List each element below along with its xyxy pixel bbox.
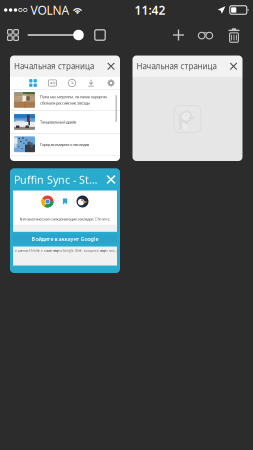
button[interactable]: New tab [166,24,190,46]
button[interactable]: Пока мы мерзнем, на каких курортах [10,90,120,110]
button[interactable]: Bookmarks [43,77,62,89]
button[interactable]: Grid layout [2,24,24,46]
staticText: Пока мы мерзнем, на каких курортах [40,94,107,99]
button[interactable]: Город всемирного наследия [10,134,120,155]
button[interactable]: Speed dial [23,77,43,89]
staticText: Puffin Sync - Step 1:... [14,172,102,187]
staticText: и данные Chrome в вашем аккаунте Google … [15,249,117,252]
staticText: VOLNA [30,2,69,18]
staticText: Город всемирного наследия [40,142,89,147]
staticText: сбежали российские звезды [40,100,90,106]
staticText: Автоматическая синхронизация закладок Ch… [19,216,110,221]
button[interactable]: New incognito tab [193,24,217,46]
button[interactable]: Close tab [226,55,240,77]
button[interactable]: History [62,77,82,89]
staticText: Начальная страница [14,61,94,71]
staticText: Начальная страница [136,61,216,71]
staticText: 11:42 [134,2,165,18]
button[interactable]: Single tab view [89,24,111,46]
button[interactable]: Close tab [104,55,118,77]
button[interactable]: Close tab [104,168,118,190]
button[interactable]: Close all tabs [222,24,246,46]
staticText: Войдите в аккаунт Google [31,235,98,243]
staticText: Танцевальный драйв [40,119,76,124]
button[interactable]: Войдите в аккаунт Google [13,234,117,243]
button[interactable]: Settings [101,77,121,89]
button[interactable]: Танцевальный драйв [10,111,120,133]
button[interactable]: Downloads [82,77,101,89]
